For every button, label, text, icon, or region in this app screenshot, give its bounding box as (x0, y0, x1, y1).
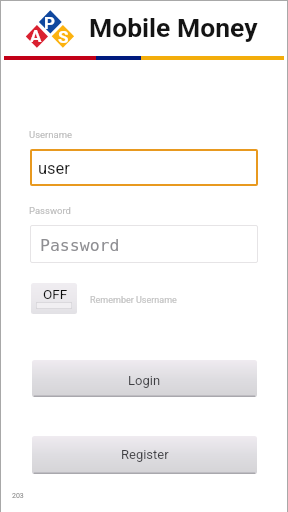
staticText: S (58, 27, 69, 47)
staticText: Password (40, 236, 120, 255)
staticText: P (44, 13, 55, 33)
staticText: A (30, 26, 42, 46)
staticText: Login (128, 373, 161, 388)
button[interactable]: user (30, 149, 258, 186)
staticText: user (38, 159, 70, 178)
button[interactable]: Login (32, 360, 257, 397)
button[interactable]: Register (32, 436, 257, 474)
button[interactable]: Remember Username, off (31, 283, 77, 314)
staticText: Username (29, 129, 73, 140)
staticText: Register (121, 447, 169, 462)
staticText: Mobile Money (89, 12, 258, 43)
staticText: 203 (12, 492, 24, 500)
staticText: Password (29, 205, 71, 216)
button[interactable]: Password (30, 225, 258, 263)
staticText: Remember Username (90, 295, 177, 306)
staticText: OFF (43, 286, 68, 302)
